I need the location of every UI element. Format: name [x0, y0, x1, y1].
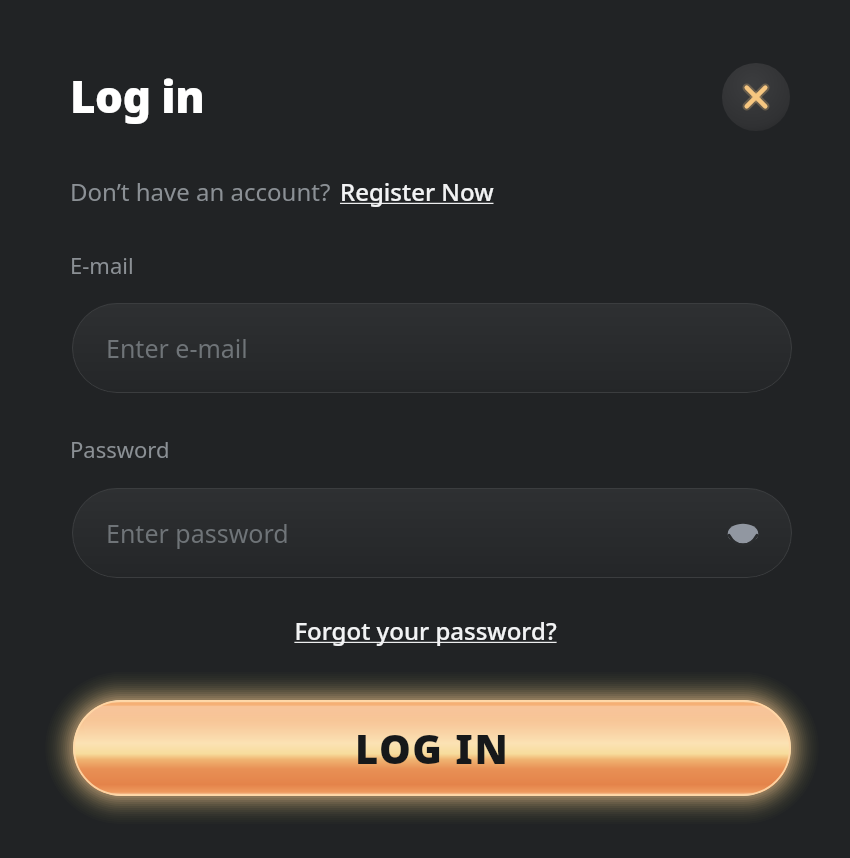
button[interactable]: Enter e-mail — [72, 303, 792, 393]
staticText: Don’t have an account? — [70, 175, 331, 208]
staticText: Register Now — [340, 175, 494, 208]
staticText: LOG IN — [355, 721, 510, 775]
button[interactable]: Register Now — [340, 175, 494, 208]
button[interactable]: Close — [722, 63, 790, 131]
button[interactable]: Forgot your password? — [294, 614, 557, 647]
staticText: Forgot your password? — [294, 614, 557, 647]
staticText: Password — [70, 434, 170, 464]
button[interactable]: LOG IN — [73, 700, 791, 796]
staticText: Log in — [70, 66, 205, 126]
staticText: Enter password — [106, 516, 289, 550]
button[interactable]: Enter password — [72, 488, 792, 578]
staticText: Enter e-mail — [106, 331, 248, 365]
staticText: E-mail — [70, 250, 134, 280]
button[interactable]: Show password — [722, 512, 764, 554]
